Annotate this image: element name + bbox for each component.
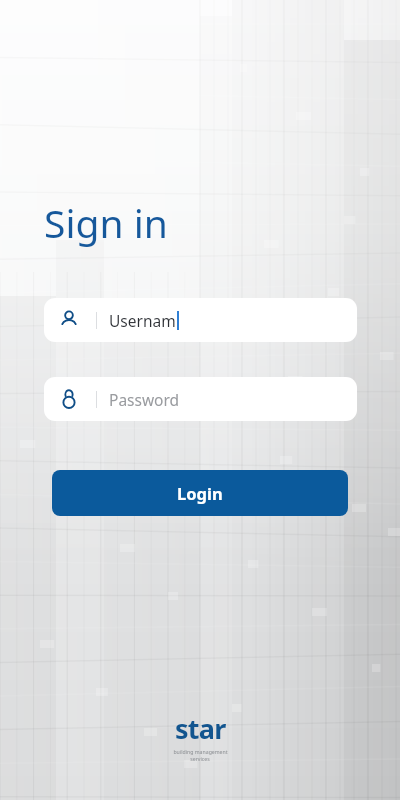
staticText: Sign in — [44, 196, 168, 249]
staticText: building management — [173, 748, 228, 755]
staticText: Password — [109, 389, 180, 410]
staticText: star — [175, 710, 226, 747]
staticText: Usernam — [109, 310, 176, 331]
staticText: services — [190, 755, 210, 762]
button[interactable]: Username — [44, 298, 357, 342]
button[interactable]: Login — [52, 470, 348, 516]
button[interactable]: Password — [44, 377, 357, 421]
staticText: Login — [177, 482, 223, 504]
